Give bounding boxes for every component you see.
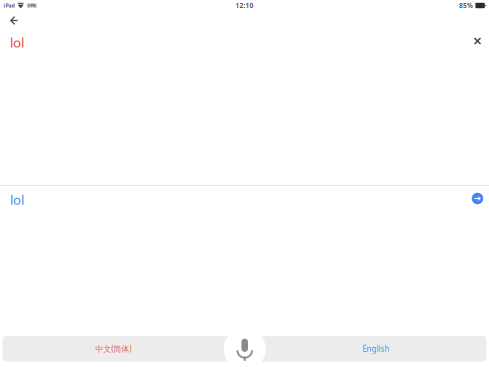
staticText: 12:10 [235,1,253,10]
staticText: lol [10,191,24,208]
button[interactable]: Back [1,10,27,30]
staticText: 中文(简体) [95,343,131,354]
staticText: 85% [459,1,473,10]
button[interactable]: 中文(简体) [2,336,224,361]
staticText: iPad [3,2,14,9]
button[interactable]: Voice input [224,328,266,367]
staticText: lol [10,33,24,51]
staticText: VPN [28,3,36,8]
staticText: English [363,343,390,354]
button[interactable]: Open translation [465,186,489,210]
button[interactable]: English [266,336,486,361]
button[interactable]: Clear text [464,30,489,52]
